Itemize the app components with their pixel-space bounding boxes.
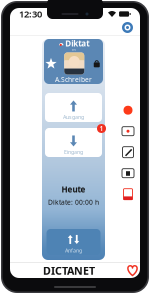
staticText: Diktate: 00:00 h	[48, 198, 99, 206]
button[interactable]: Einstellungen	[119, 19, 136, 36]
button[interactable]: Scannen	[115, 163, 141, 184]
staticText: Diktat	[65, 38, 89, 49]
button[interactable]: Aufnahme starten	[115, 100, 141, 121]
staticText: A.Schreiber	[55, 75, 92, 84]
button[interactable]: Notiz erstellen	[115, 142, 141, 163]
staticText: Eingang	[64, 148, 83, 156]
button[interactable]: PDF erstellen	[115, 184, 141, 205]
button[interactable]: Video aufnehmen	[115, 121, 141, 142]
button[interactable]: Eingang	[45, 128, 102, 157]
staticText: 1	[99, 124, 103, 133]
staticText: DICTANET	[43, 263, 95, 278]
button[interactable]: Diktat	[44, 39, 103, 84]
staticText: en	[71, 47, 75, 52]
staticText: Heute	[61, 184, 85, 195]
button[interactable]: Anfang	[46, 229, 100, 255]
staticText: Ausgang	[63, 113, 84, 121]
button[interactable]: Ausgang	[45, 93, 102, 122]
staticText: Anfang	[65, 247, 82, 254]
staticText: 12:30	[19, 8, 42, 20]
